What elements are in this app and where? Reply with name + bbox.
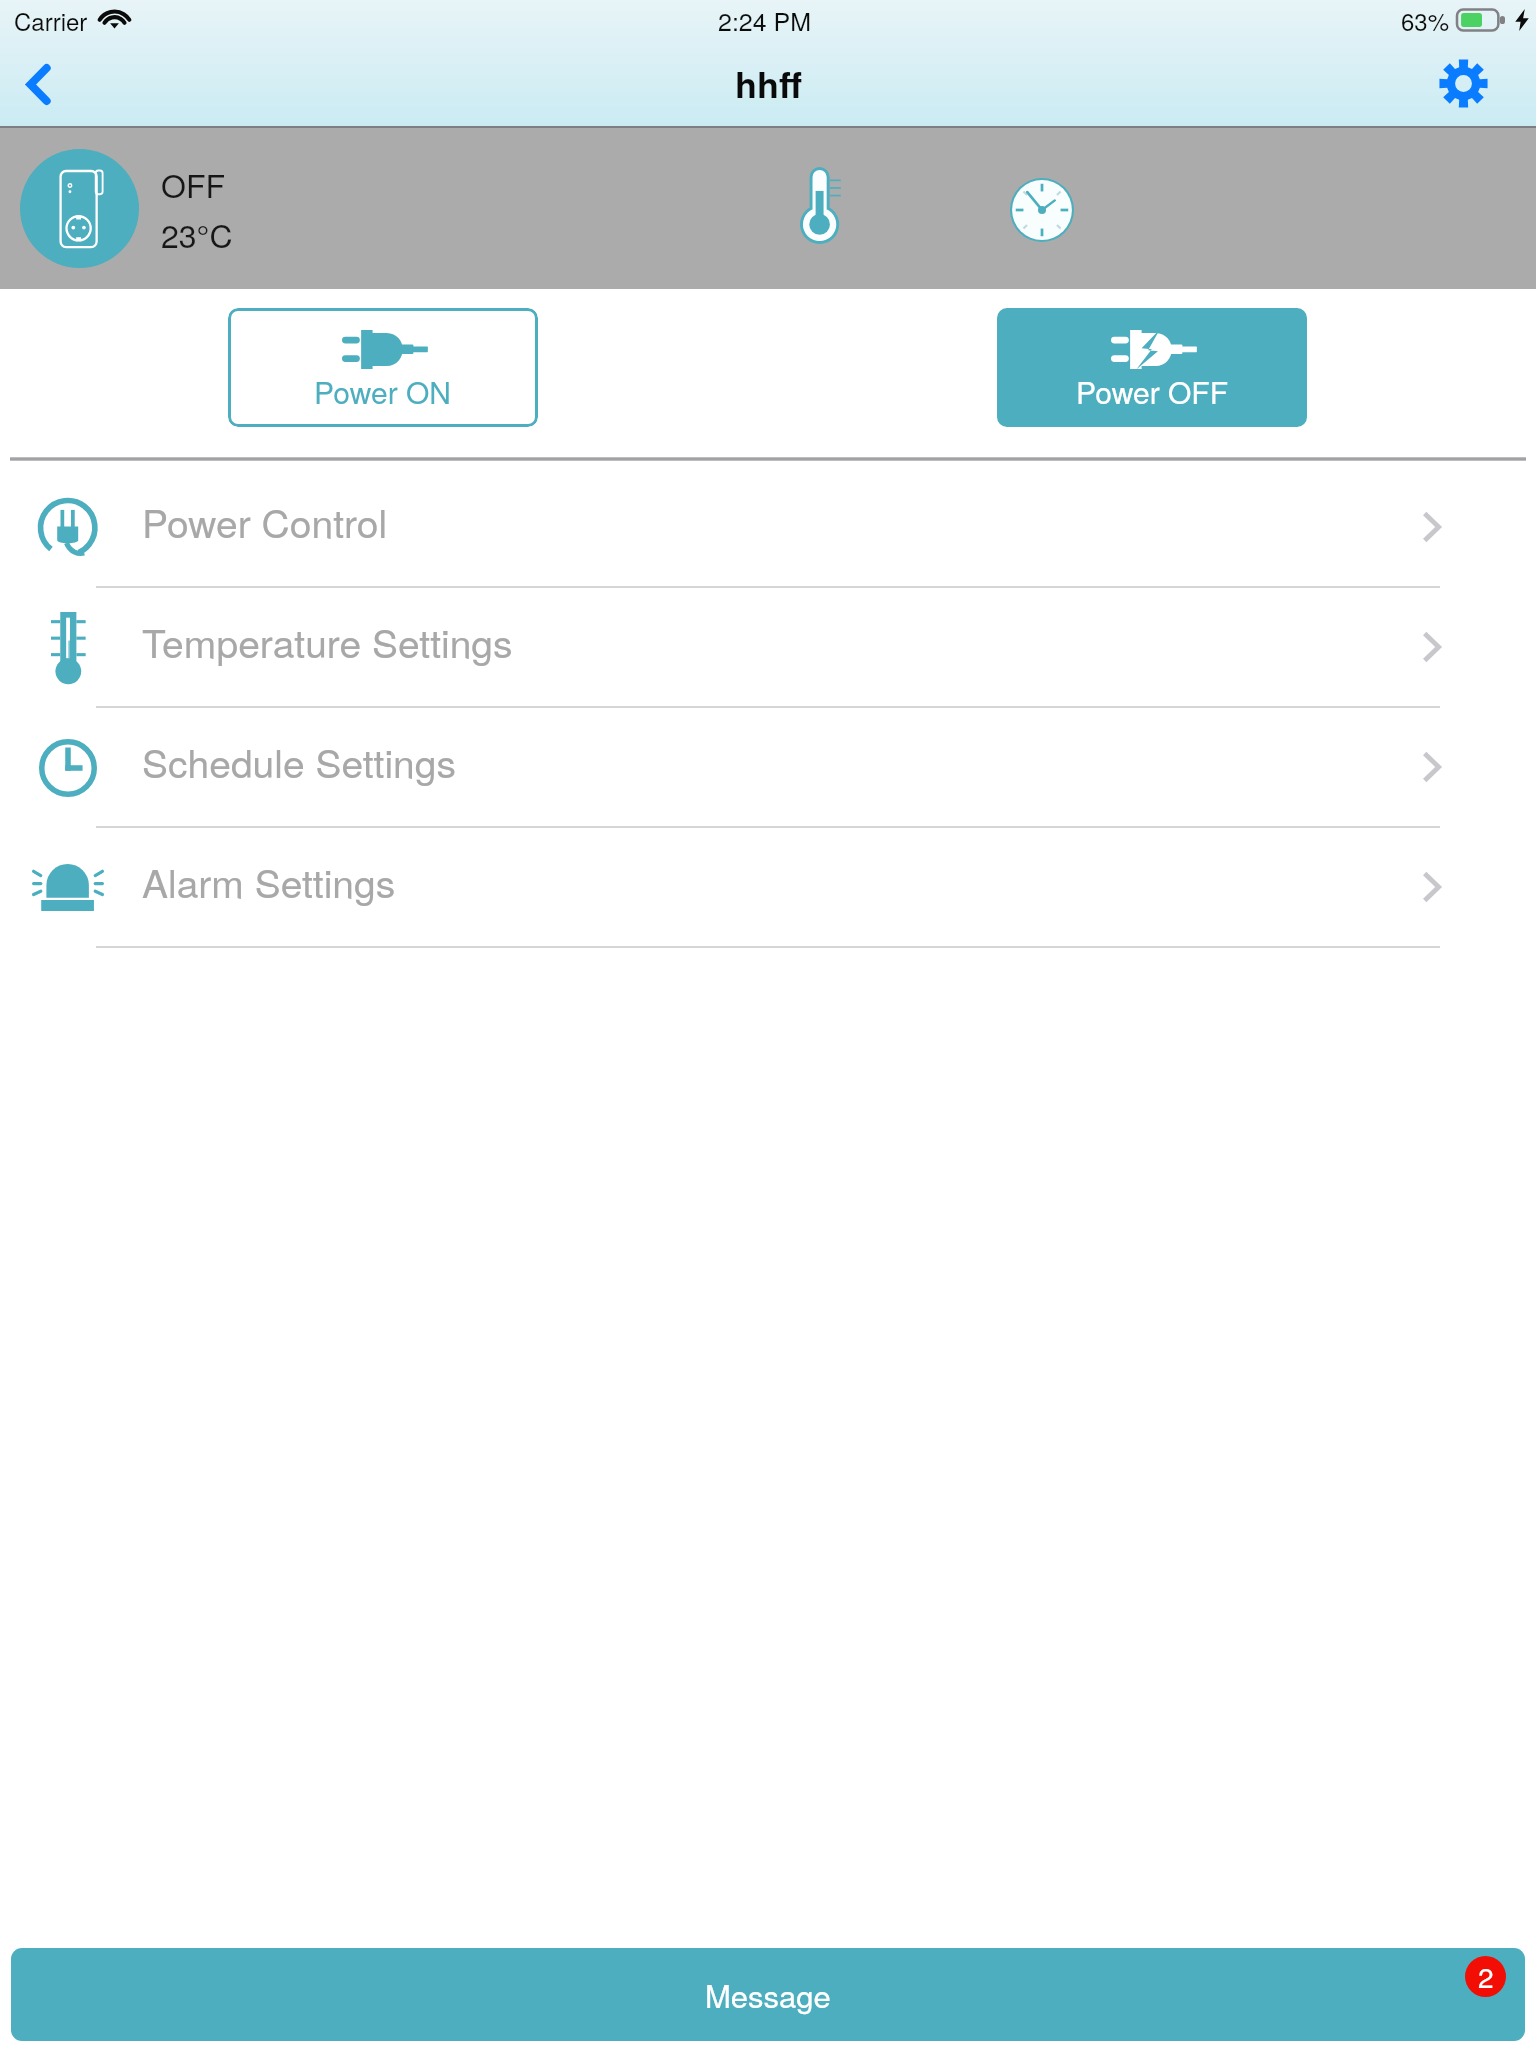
button[interactable]: Schedule Settings xyxy=(0,707,1536,827)
button[interactable]: Message xyxy=(11,1948,1525,2041)
staticText: Alarm Settings xyxy=(142,853,396,909)
button[interactable]: Power ON xyxy=(228,308,538,427)
staticText: 63% xyxy=(1401,3,1450,37)
button[interactable]: Schedule xyxy=(1000,147,1084,271)
staticText: Carrier xyxy=(14,3,88,37)
staticText: Message xyxy=(705,1972,831,2016)
staticText: OFF xyxy=(161,161,226,207)
staticText: 2:24 PM xyxy=(718,2,812,38)
staticText: Power OFF xyxy=(1076,370,1229,413)
staticText: 2 xyxy=(1478,1956,1494,1996)
staticText: Power ON xyxy=(314,370,452,413)
button[interactable]: Temperature xyxy=(778,147,862,271)
staticText: Power Control xyxy=(142,493,388,549)
staticText: Temperature Settings xyxy=(142,613,513,669)
staticText: hhff xyxy=(735,57,802,109)
button[interactable]: Back xyxy=(0,42,92,128)
staticText: 23°C xyxy=(161,211,233,257)
button[interactable]: Alarm Settings xyxy=(0,827,1536,947)
button[interactable]: Settings xyxy=(1416,42,1536,128)
staticText: Schedule Settings xyxy=(142,733,456,789)
button[interactable]: Power OFF xyxy=(997,308,1307,427)
button[interactable]: Temperature Settings xyxy=(0,587,1536,707)
button[interactable]: Power Control xyxy=(0,467,1536,587)
